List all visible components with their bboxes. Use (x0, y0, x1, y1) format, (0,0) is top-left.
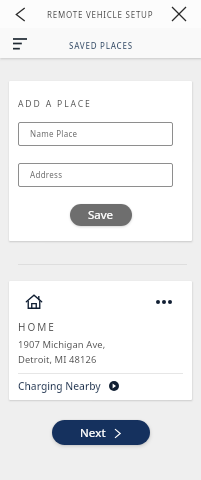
staticText: Next (80, 425, 106, 441)
button[interactable]: Home (26, 294, 42, 309)
button[interactable]: Save (70, 204, 132, 226)
staticText: Save (88, 207, 114, 223)
button[interactable]: Address (18, 163, 173, 187)
button[interactable]: Name Place (18, 122, 173, 146)
staticText: 1907 Michigan Ave, (18, 338, 106, 351)
staticText: Charging Nearby (18, 379, 101, 393)
staticText: Name Place (30, 128, 78, 139)
button[interactable]: SAVED PLACES (65, 36, 137, 55)
staticText: SAVED PLACES (69, 40, 133, 51)
button[interactable]: Next (52, 420, 150, 445)
button[interactable]: Close (168, 3, 190, 25)
staticText: Detroit, MI 48126 (18, 353, 97, 366)
button[interactable]: Charging Nearby (18, 379, 119, 393)
button[interactable]: Back (9, 3, 31, 25)
staticText: HOME (18, 320, 56, 334)
staticText: Address (30, 169, 63, 180)
button[interactable]: More options (155, 293, 173, 311)
staticText: ADD A PLACE (18, 98, 92, 110)
button[interactable]: Filter list (9, 32, 31, 54)
staticText: REMOTE VEHICLE SETUP (47, 9, 154, 20)
